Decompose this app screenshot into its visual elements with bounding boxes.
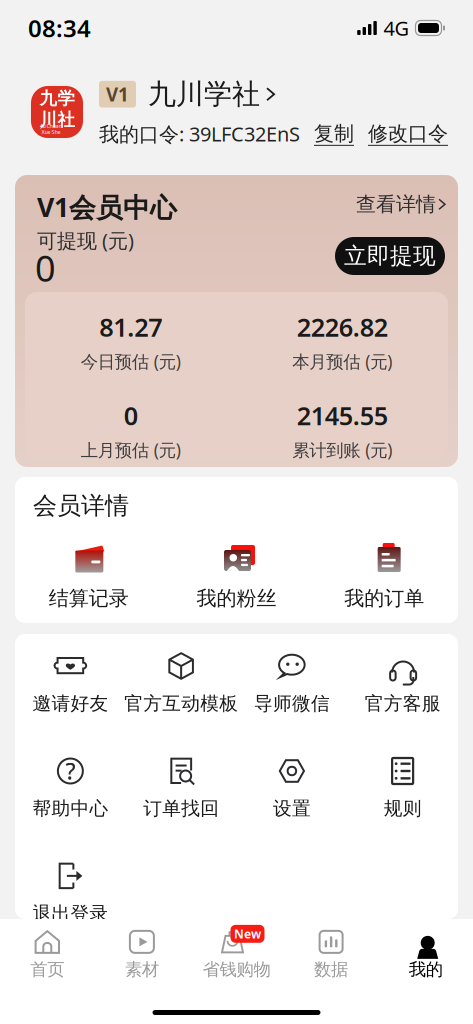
button[interactable]: 邀请好友 [15,652,126,727]
staticText: 省钱购物 [202,959,270,980]
staticText: 帮助中心 [32,797,108,820]
staticText: 首页 [30,959,64,980]
staticText: 官方互动模板 [124,692,238,715]
staticText: 2226.82 [297,310,388,344]
button[interactable]: 首页 [0,929,95,981]
button[interactable]: 数据 [284,929,378,981]
button[interactable]: 官方客服 [347,652,458,727]
button[interactable]: 规则 [347,757,458,832]
staticText: 累计到账 (元) [292,438,392,461]
button[interactable]: 素材 [95,929,189,981]
staticText: 4G [383,15,409,41]
staticText: 川 [39,109,56,130]
staticText: 0 [35,244,56,292]
staticText: 查看详情 [356,192,436,217]
staticText: 08:34 [28,12,91,44]
staticText: 订单找回 [143,797,219,820]
button[interactable]: 复制 [300,121,354,146]
button[interactable]: 退出登录 [15,862,126,937]
staticText: 修改口令 [368,121,448,146]
staticText: 设置 [273,797,311,820]
button[interactable]: 查看详情 [356,192,446,217]
button[interactable]: 我的订单 [310,539,458,619]
button[interactable]: 我的 [378,929,473,981]
button[interactable]: 立即提现 [335,237,445,275]
staticText: 我的订单 [344,586,424,611]
staticText: V1 [106,82,129,107]
staticText: 会员详情 [33,491,129,520]
staticText: 复制 [314,121,354,146]
staticText: Jiu Chuan [40,122,61,129]
button[interactable]: 订单找回 [126,757,237,832]
staticText: 我的 [409,959,443,980]
button[interactable]: V1 [99,77,275,111]
button[interactable]: 结算记录 [15,539,163,619]
staticText: 本月预估 (元) [292,350,392,373]
button[interactable]: New [189,929,284,981]
button[interactable]: 导师微信 [236,652,347,727]
button[interactable]: 设置 [236,757,347,832]
staticText: 结算记录 [49,586,129,611]
staticText: 素材 [125,959,159,980]
staticText: 九 [39,88,56,109]
staticText: New [234,926,261,942]
staticText: 我的口令: 39LFC32EnS [99,120,300,147]
staticText: 立即提现 [344,242,436,270]
staticText: 九川学社 [148,77,260,111]
staticText: 2145.55 [297,399,388,432]
staticText: Xue She [41,128,60,136]
staticText: 学 [57,88,74,109]
button[interactable]: 修改口令 [354,121,448,146]
staticText: 0 [124,399,138,432]
staticText: 退出登录 [32,902,108,925]
staticText: V1会员中心 [37,189,177,225]
staticText: 规则 [384,797,422,820]
staticText: 邀请好友 [32,692,108,715]
staticText: 81.27 [99,310,162,344]
staticText: 导师微信 [254,692,330,715]
staticText: 今日预估 (元) [81,350,181,373]
button[interactable]: ? [15,757,126,832]
staticText: 官方客服 [365,692,441,715]
staticText: 可提现 (元) [37,227,134,254]
staticText: 我的粉丝 [196,586,276,611]
button[interactable]: 官方互动模板 [126,652,237,727]
staticText: 社 [57,109,74,130]
staticText: ? [65,756,75,786]
staticText: 上月预估 (元) [81,438,181,461]
button[interactable]: 我的粉丝 [163,539,310,619]
staticText: 数据 [314,959,348,980]
